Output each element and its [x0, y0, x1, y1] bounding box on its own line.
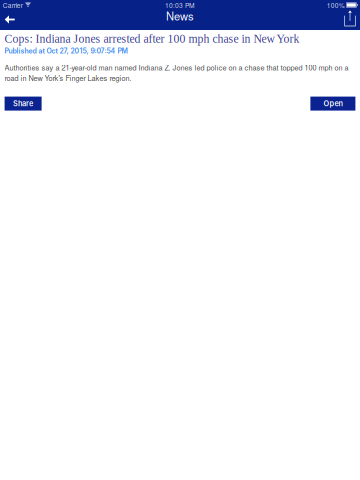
button[interactable]: Open — [310, 97, 355, 111]
staticText: Open — [323, 99, 342, 108]
staticText: News — [166, 8, 194, 24]
staticText: Cops: Indiana Jones arrested after 100 m… — [5, 32, 300, 45]
staticText: Carrier — [3, 0, 23, 10]
staticText: 100% — [327, 0, 345, 10]
staticText: Share — [13, 99, 33, 108]
button[interactable]: Back — [0, 9, 20, 29]
staticText: Authorities say a 21-year-old man named … — [5, 62, 349, 83]
button[interactable]: Share — [339, 8, 360, 28]
staticText: Published at Oct 27, 2015, 9:07:54 PM — [5, 47, 128, 55]
button[interactable]: Share — [5, 97, 42, 111]
staticText: 10:03 PM — [165, 0, 195, 10]
